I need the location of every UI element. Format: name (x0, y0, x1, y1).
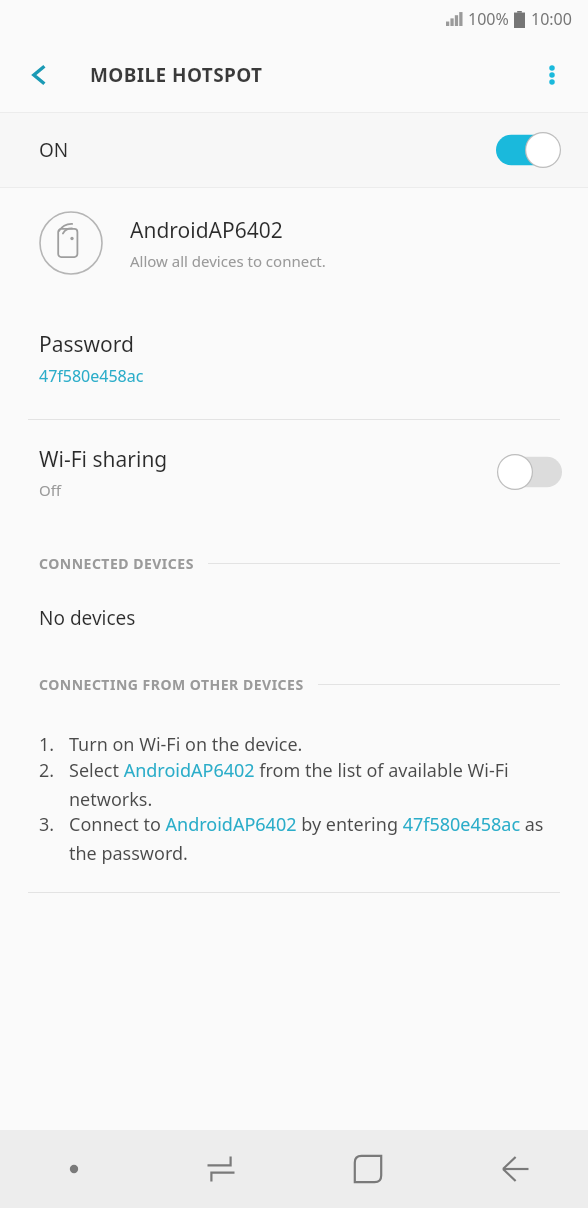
staticText: 1. (39, 732, 55, 757)
button[interactable]: Wi-Fi sharing (0, 420, 588, 524)
staticText: 3. (39, 812, 55, 837)
button[interactable]: More options (526, 49, 578, 101)
button[interactable]: ON (0, 112, 588, 188)
staticText: Connect to AndroidAP6402 by entering 47f… (69, 812, 548, 865)
staticText: Turn on Wi-Fi on the device. (69, 732, 303, 757)
staticText: Off (39, 480, 62, 500)
button[interactable]: Home (294, 1130, 441, 1208)
staticText: 10:00 (531, 8, 572, 30)
staticText: Allow all devices to connect. (130, 251, 326, 271)
button[interactable]: Password (0, 298, 588, 419)
button[interactable]: Indicator (0, 1130, 147, 1208)
staticText: ON (39, 137, 69, 163)
staticText: 47f580e458ac (39, 365, 144, 387)
staticText: MOBILE HOTSPOT (90, 62, 263, 88)
staticText: Select AndroidAP6402 from the list of av… (69, 758, 548, 811)
staticText: 100% (468, 8, 509, 30)
staticText: No devices (39, 605, 136, 631)
staticText: CONNECTED DEVICES (39, 554, 194, 573)
staticText: CONNECTING FROM OTHER DEVICES (39, 675, 304, 694)
button[interactable]: Recents (147, 1130, 294, 1208)
staticText: Wi-Fi sharing (39, 445, 168, 474)
button[interactable]: Back (14, 49, 66, 101)
button[interactable]: Back (441, 1130, 588, 1208)
staticText: AndroidAP6402 (130, 216, 283, 245)
button[interactable]: AndroidAP6402 (0, 188, 588, 298)
staticText: Password (39, 330, 134, 359)
staticText: 2. (39, 758, 55, 783)
